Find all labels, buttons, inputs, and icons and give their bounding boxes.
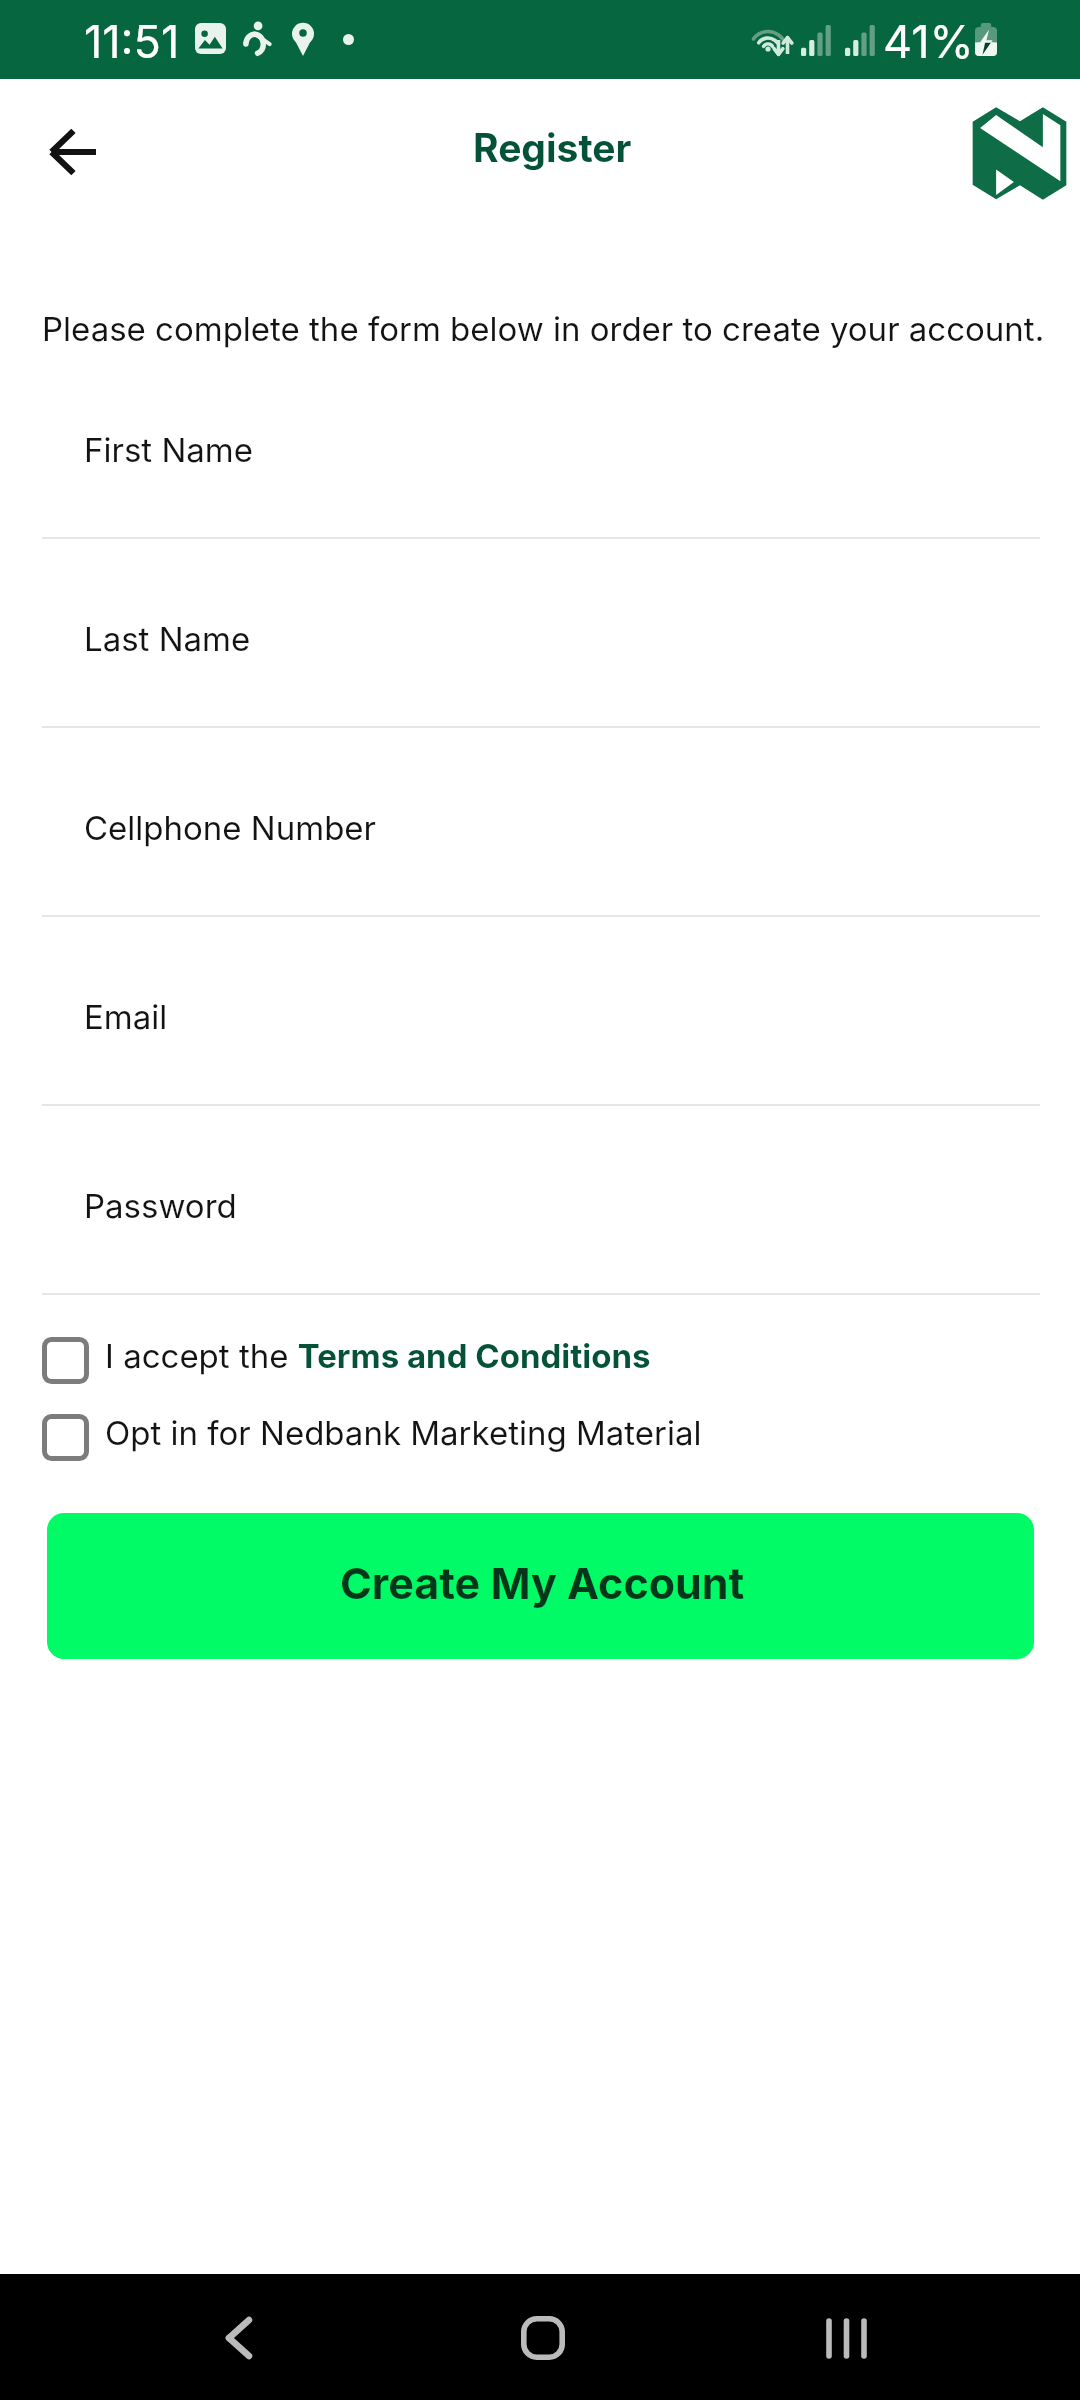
button[interactable]: Nedbank [959,92,1079,212]
button[interactable]: Email [0,916,1080,1105]
staticText: 11:51 [84,14,180,68]
staticText: Email [84,997,168,1037]
button[interactable]: Recents [798,2290,894,2386]
button[interactable]: Home [495,2290,591,2386]
button[interactable]: Opt in for Nedbank Marketing Material [0,1395,1080,1471]
button[interactable]: Back [27,106,119,198]
staticText: 41% [883,14,974,68]
staticText: Opt in for Nedbank Marketing Material [105,1413,702,1453]
staticText: Create My Account [340,1557,745,1609]
staticText: I accept the Terms and Conditions [105,1336,651,1376]
staticText: Register [473,124,632,171]
staticText: Please complete the form below in order … [42,309,1045,349]
staticText: Last Name [84,619,251,659]
staticText: Password [84,1186,237,1226]
button[interactable]: I accept the Terms and Conditions [0,1318,1080,1394]
button[interactable]: Create My Account [47,1513,1034,1659]
staticText: Cellphone Number [84,808,377,848]
button[interactable]: Password [0,1105,1080,1294]
button[interactable]: Cellphone Number [0,727,1080,916]
button[interactable]: Last Name [0,538,1080,727]
staticText: First Name [84,430,253,470]
button[interactable]: Back [191,2290,287,2386]
button[interactable]: First Name [0,349,1080,538]
